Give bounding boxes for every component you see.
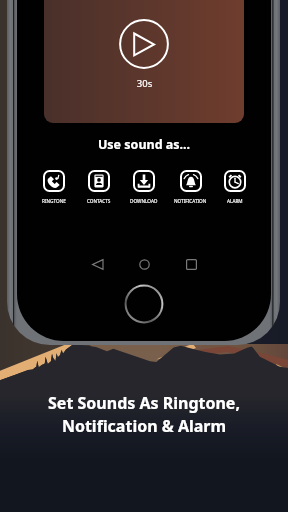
button[interactable]: Back <box>82 249 112 279</box>
staticText: DOWNLOAD <box>130 198 158 204</box>
staticText: CONTACTS <box>87 198 111 204</box>
button[interactable]: Home <box>129 249 159 279</box>
button[interactable]: Recent apps <box>176 249 206 279</box>
staticText: NOTIFICATION <box>174 198 207 204</box>
button[interactable] <box>44 0 244 123</box>
staticText: ALARM <box>227 198 243 204</box>
staticText: Set Sounds As Ringtone, Notification & A… <box>0 392 288 437</box>
staticText: Use sound as... <box>17 136 271 153</box>
button[interactable]: NOTIFICATION <box>168 170 212 204</box>
button[interactable]: RINGTONE <box>32 170 76 204</box>
button[interactable]: Play <box>118 18 170 70</box>
button[interactable]: CONTACTS <box>77 170 121 204</box>
button[interactable]: ALARM <box>213 170 257 204</box>
staticText: RINGTONE <box>42 198 66 204</box>
button[interactable]: DOWNLOAD <box>122 170 166 204</box>
staticText: 30s <box>124 77 165 90</box>
